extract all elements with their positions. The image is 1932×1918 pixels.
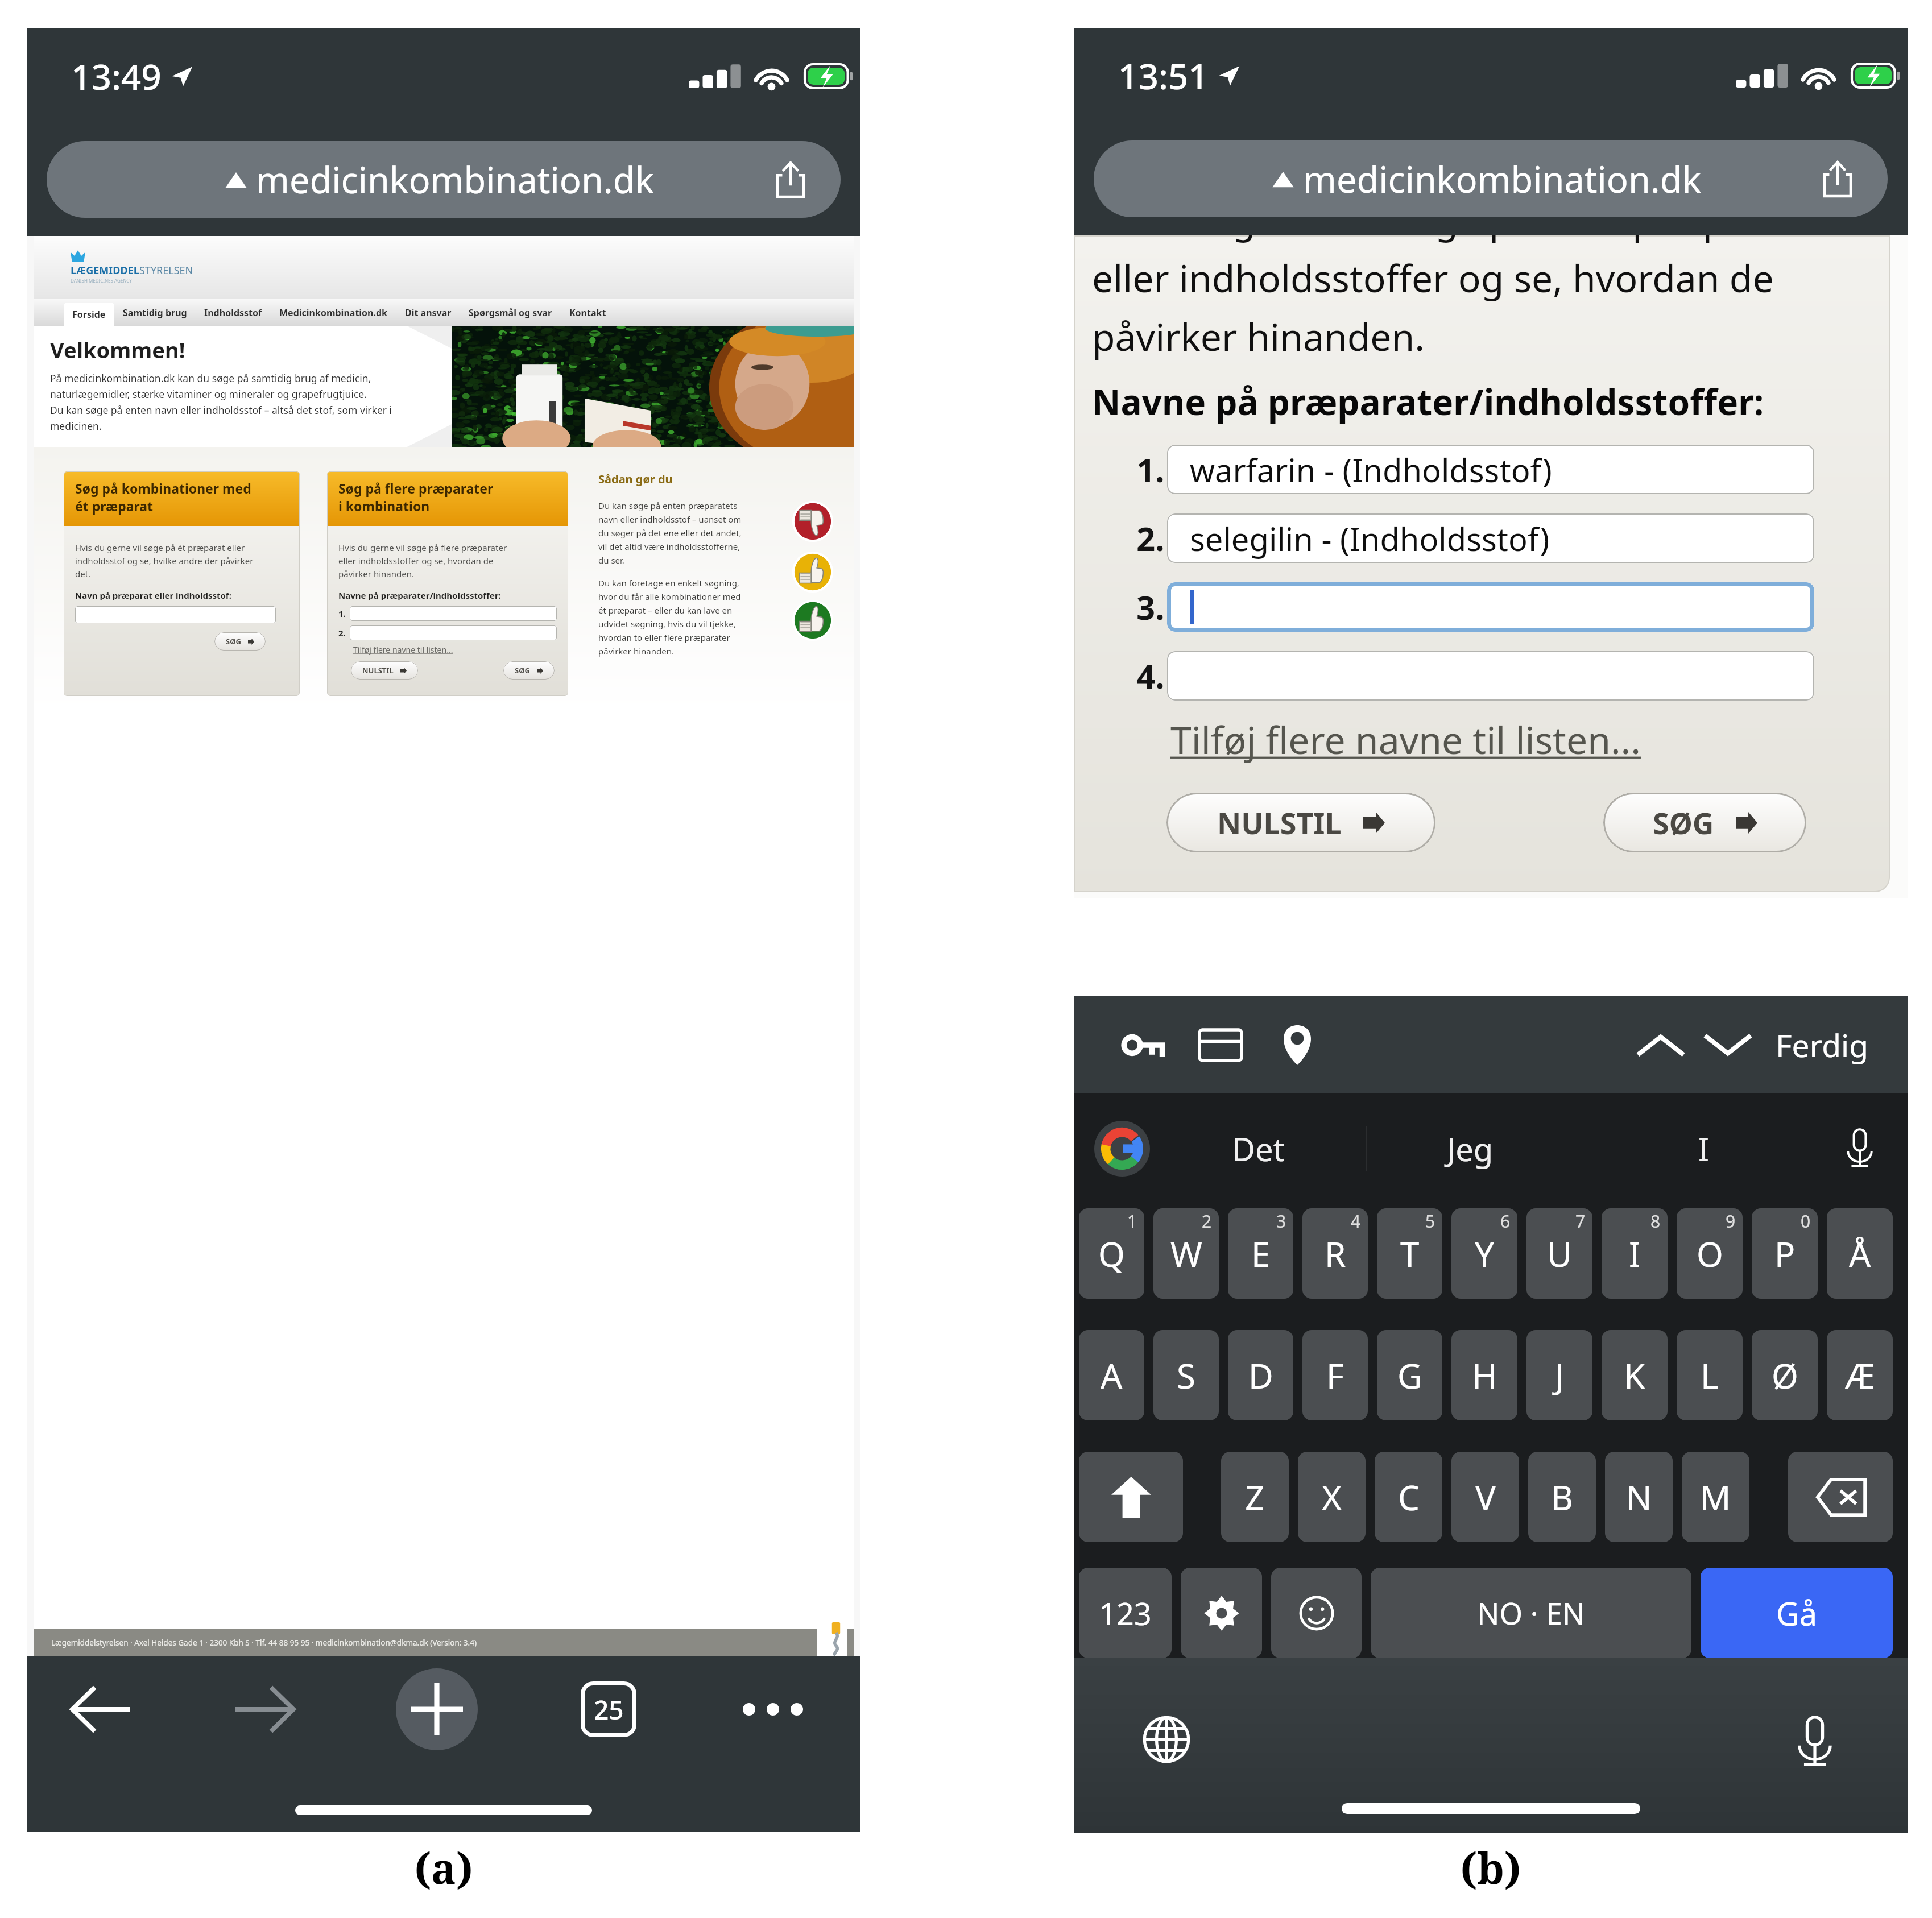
button[interactable]: W	[1153, 1208, 1219, 1299]
button[interactable]: Ø	[1752, 1330, 1818, 1420]
button[interactable]: Indholdsstof	[196, 299, 271, 326]
staticText: Dit ansvar	[405, 306, 452, 319]
staticText: Navne på præparater/indholdsstoffer:	[1092, 378, 1764, 425]
button[interactable]	[1167, 651, 1814, 701]
button[interactable]	[1167, 582, 1814, 632]
button[interactable]: medicinkombination.dk	[1094, 140, 1888, 217]
button[interactable]: Spørgsmål og svar	[460, 299, 561, 326]
button[interactable]: H	[1451, 1330, 1517, 1420]
button[interactable]: Y	[1451, 1208, 1517, 1299]
button[interactable]: Share	[1823, 161, 1852, 197]
staticText: A	[1101, 1352, 1123, 1399]
button[interactable]: medicinkombination.dk	[47, 141, 841, 218]
button[interactable]: Å	[1827, 1208, 1893, 1299]
staticText: SØG	[226, 636, 241, 647]
button[interactable]: R	[1302, 1208, 1368, 1299]
button[interactable]: N	[1605, 1452, 1673, 1542]
button[interactable]: Share	[776, 161, 805, 198]
button[interactable]: Previous field	[1633, 1018, 1688, 1072]
button[interactable]: F	[1302, 1330, 1368, 1420]
button[interactable]: Tilføj flere navne til listen...	[1170, 714, 1641, 765]
button[interactable]: S	[1153, 1330, 1219, 1420]
button[interactable]: NO · EN	[1371, 1568, 1691, 1658]
button[interactable]: Dit ansvar	[396, 299, 460, 326]
button[interactable]: Æ	[1827, 1330, 1893, 1420]
button[interactable]: warfarin - (Indholdsstof)	[1167, 445, 1814, 494]
staticText: B	[1551, 1474, 1573, 1521]
button[interactable]: Back	[67, 1676, 134, 1743]
button[interactable]: Medicinkombination.dk	[271, 299, 396, 326]
staticText: medicinkombination.dk	[1303, 155, 1702, 204]
staticText: 1	[1127, 1209, 1137, 1233]
button[interactable]	[75, 606, 276, 623]
button[interactable]: Z	[1221, 1452, 1289, 1542]
staticText: J	[1555, 1352, 1565, 1399]
button[interactable]: L	[1677, 1330, 1743, 1420]
button[interactable]	[1079, 1452, 1183, 1542]
button[interactable]: O	[1677, 1208, 1743, 1299]
button[interactable]: J	[1526, 1330, 1592, 1420]
button[interactable]: V	[1451, 1452, 1519, 1542]
button[interactable]	[1271, 1568, 1362, 1658]
button[interactable]: SØG	[1603, 793, 1806, 852]
button[interactable]: G	[1377, 1330, 1442, 1420]
button[interactable]: Tilføj flere navne til listen...	[353, 644, 453, 655]
button[interactable]: C	[1375, 1452, 1442, 1542]
button[interactable]: More	[739, 1676, 806, 1743]
button[interactable]: Dictation	[1785, 1713, 1844, 1772]
button[interactable]: Google	[1094, 1121, 1150, 1177]
staticText: STYRELSEN	[139, 263, 193, 277]
button[interactable]: I	[1602, 1208, 1668, 1299]
button[interactable]: NULSTIL	[351, 661, 418, 680]
button[interactable]: Cards	[1199, 1024, 1242, 1067]
button[interactable]: Ferdig	[1772, 1024, 1872, 1066]
button[interactable]: Samtidig brug	[114, 299, 196, 326]
staticText: warfarin - (Indholdsstof)	[1190, 448, 1552, 491]
button[interactable]: 123	[1079, 1568, 1172, 1658]
button[interactable]: B	[1528, 1452, 1596, 1542]
button[interactable]: D	[1228, 1330, 1293, 1420]
staticText: Hvis du gerne vil søge på flere præparat…	[1092, 235, 1833, 362]
button[interactable]: A	[1079, 1330, 1144, 1420]
button[interactable]: Next field	[1701, 1018, 1755, 1072]
button[interactable]: Voice input	[1832, 1121, 1887, 1176]
button[interactable]: Change keyboard	[1139, 1712, 1194, 1767]
button[interactable]: P	[1752, 1208, 1818, 1299]
button[interactable]: SØG	[214, 632, 266, 651]
button[interactable]: NULSTIL	[1166, 793, 1435, 852]
button[interactable]: U	[1526, 1208, 1592, 1299]
button[interactable]: Forward	[231, 1676, 299, 1743]
button[interactable]: selegilin - (Indholdsstof)	[1167, 513, 1814, 563]
staticText: Tilføj flere navne til listen...	[1170, 714, 1641, 765]
button[interactable]: Jeg	[1367, 1093, 1574, 1204]
button[interactable]: Addresses	[1276, 1024, 1319, 1067]
button[interactable]: X	[1298, 1452, 1366, 1542]
button[interactable]	[1788, 1452, 1893, 1542]
button[interactable]: E	[1228, 1208, 1293, 1299]
staticText: Søg på flere præparater	[338, 479, 494, 497]
button[interactable]: Det	[1150, 1093, 1366, 1204]
button[interactable]: T	[1377, 1208, 1442, 1299]
button[interactable]: I	[1574, 1093, 1832, 1204]
button[interactable]	[1181, 1568, 1262, 1658]
button[interactable]	[350, 625, 557, 640]
button[interactable]: M	[1682, 1452, 1749, 1542]
staticText: U	[1547, 1231, 1572, 1277]
staticText: Hvis du gerne vil søge på ét præparat el…	[75, 542, 254, 579]
staticText: medicinkombination.dk	[256, 155, 655, 204]
button[interactable]: Kontakt	[561, 299, 615, 326]
staticText: 5	[1425, 1209, 1435, 1233]
button[interactable]: K	[1602, 1330, 1668, 1420]
button[interactable]: Q	[1079, 1208, 1144, 1299]
button[interactable]: Tabs	[575, 1676, 642, 1743]
staticText: Z	[1245, 1474, 1265, 1521]
staticText: 0	[1801, 1209, 1811, 1233]
button[interactable]: Passwords	[1122, 1024, 1165, 1067]
button[interactable]: Gå	[1701, 1568, 1893, 1658]
staticText: Sådan gør du	[598, 471, 673, 487]
button[interactable]: New tab	[396, 1668, 478, 1750]
staticText: i kombination	[338, 497, 430, 515]
button[interactable]: SØG	[503, 661, 555, 680]
button[interactable]	[350, 606, 557, 621]
button[interactable]: Forside	[64, 303, 114, 326]
